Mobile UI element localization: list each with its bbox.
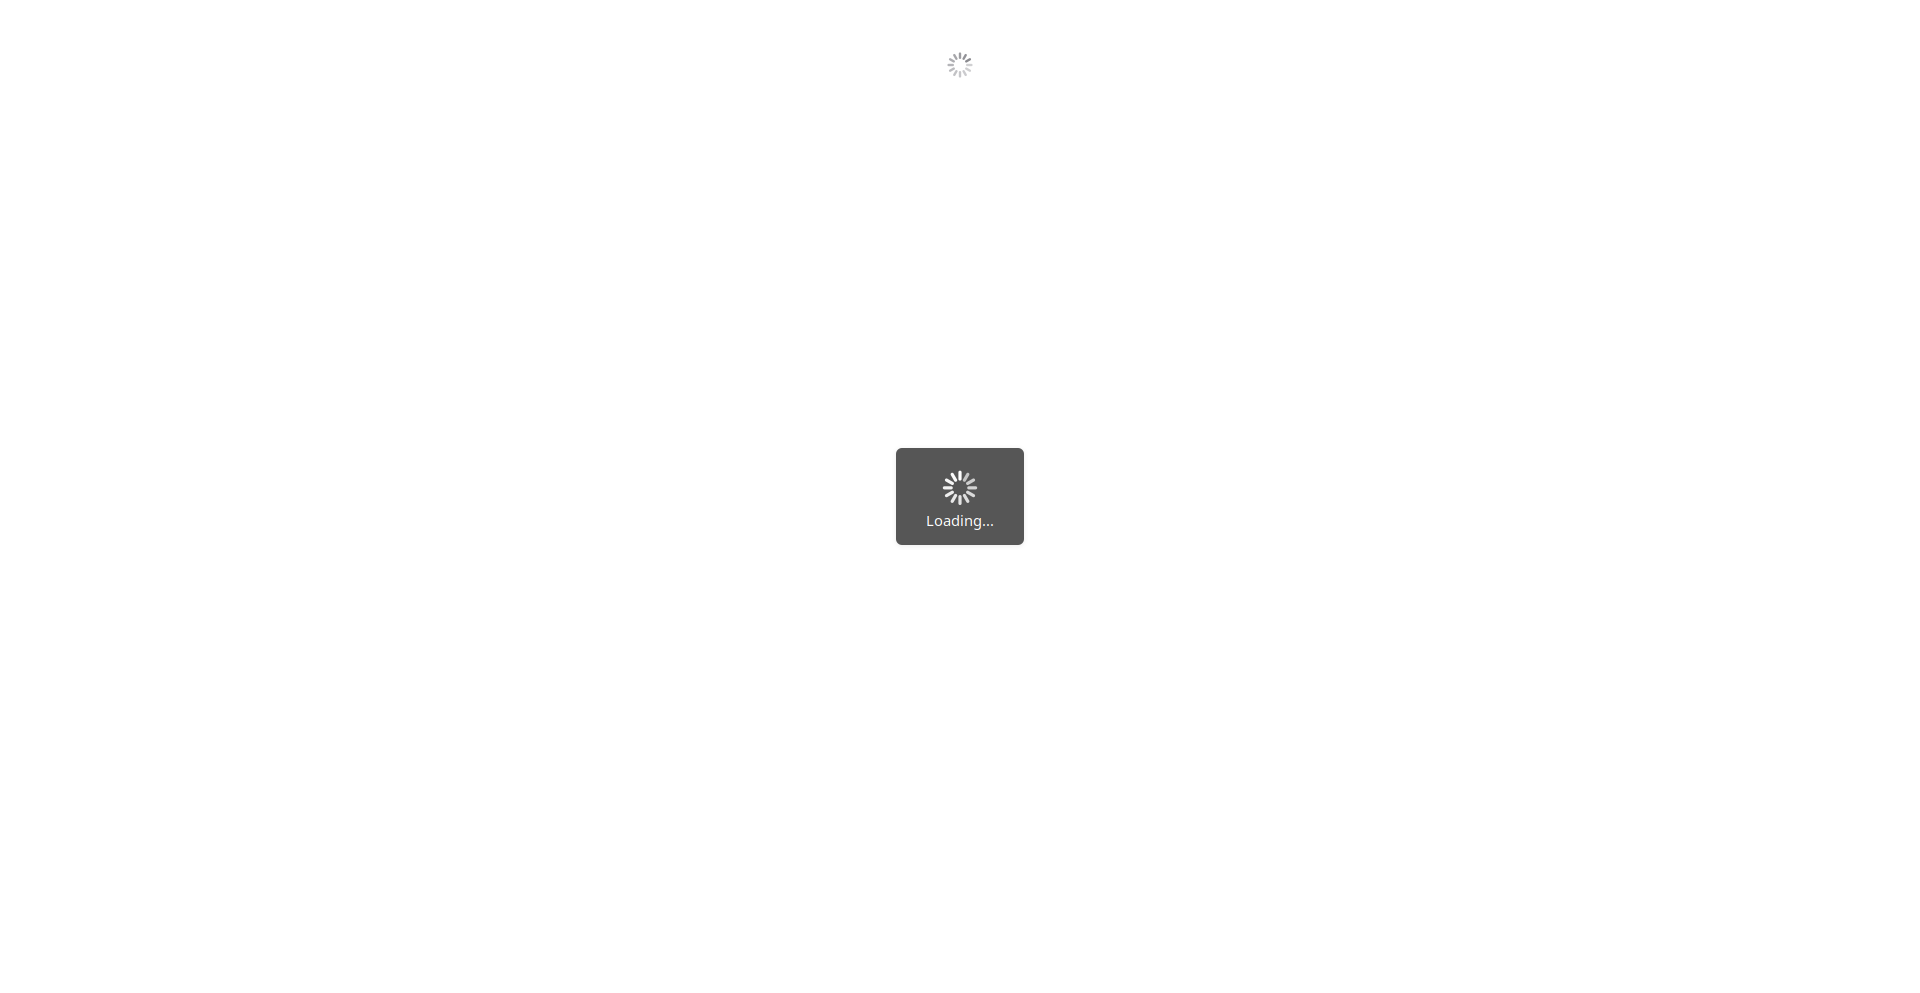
staticText: Loading... [926,511,994,530]
